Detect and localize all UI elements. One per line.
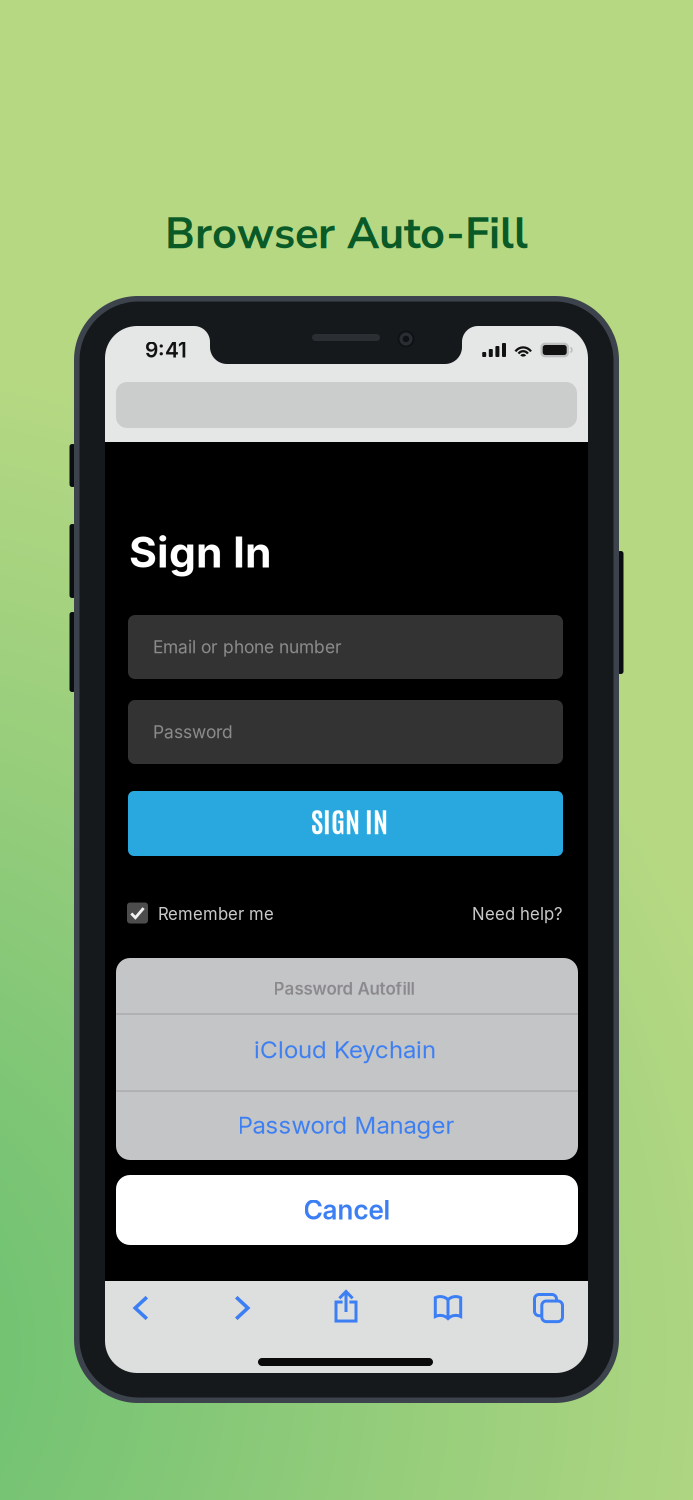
staticText: Remember me — [158, 904, 274, 924]
button[interactable]: Cancel — [116, 1175, 578, 1245]
staticText: Cancel — [303, 1194, 390, 1226]
staticText: Email or phone number — [153, 636, 342, 657]
button[interactable]: Tabs — [518, 1280, 578, 1336]
button[interactable]: Forward — [212, 1280, 272, 1336]
staticText: Sign In — [129, 526, 272, 578]
button[interactable]: Password Manager — [116, 1091, 578, 1160]
button[interactable]: Share — [316, 1278, 376, 1334]
staticText: Browser Auto-Fill — [165, 204, 528, 263]
staticText: Need help? — [472, 904, 563, 924]
button[interactable]: iCloud Keychain — [116, 1014, 578, 1090]
button[interactable]: Need help? — [405, 900, 563, 928]
button[interactable]: Back — [111, 1280, 171, 1336]
button[interactable]: SIGN IN — [128, 791, 563, 856]
staticText: Password Autofill — [273, 978, 414, 999]
staticText: Password — [153, 721, 233, 742]
staticText: iCloud Keychain — [254, 1035, 436, 1064]
staticText: Password Manager — [237, 1110, 454, 1140]
button[interactable]: Bookmarks — [418, 1280, 478, 1336]
staticText: SIGN IN — [311, 801, 388, 838]
staticText: 9:41 — [145, 337, 187, 363]
